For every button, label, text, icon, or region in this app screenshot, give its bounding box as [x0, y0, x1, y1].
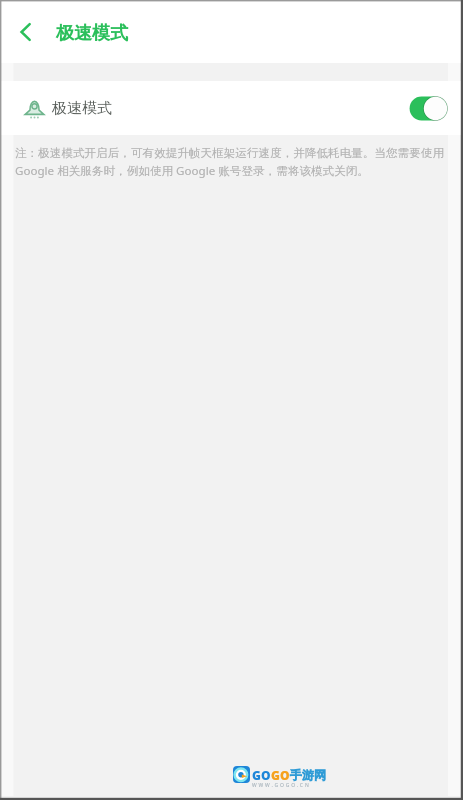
staticText: 极速模式 — [52, 99, 112, 118]
staticText: WWW.GOGO.CN — [252, 782, 311, 789]
button[interactable]: 极速模式 — [0, 81, 463, 135]
staticText: GO — [271, 767, 290, 783]
staticText: GO — [252, 767, 271, 783]
button[interactable]: Back — [0, 0, 50, 63]
staticText: 极速模式 — [56, 22, 128, 45]
button[interactable]: 极速模式开关 — [409, 96, 448, 121]
staticText: 手游网 — [290, 767, 326, 782]
staticText: 注：极速模式开启后，可有效提升帧天框架运行速度，并降低耗电量。当您需要使用 Go… — [15, 145, 460, 178]
